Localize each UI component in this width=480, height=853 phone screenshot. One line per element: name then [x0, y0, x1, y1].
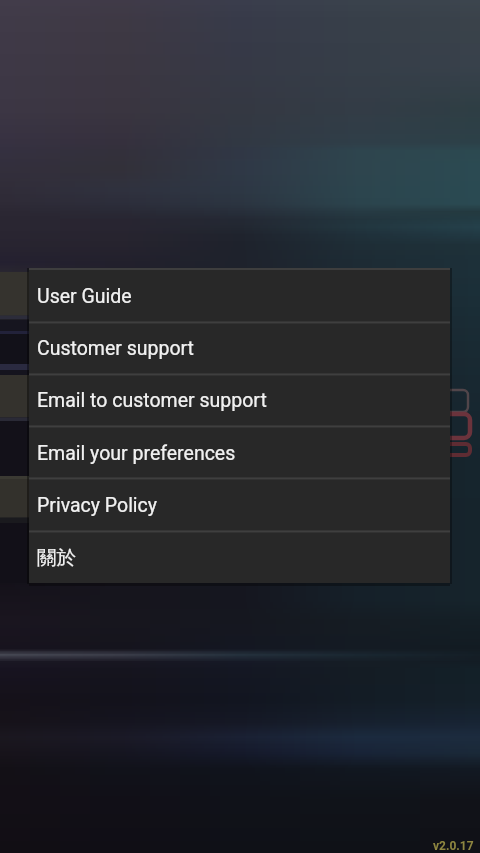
button[interactable]: User Guide [29, 270, 450, 322]
button[interactable]: Privacy Policy [29, 479, 450, 531]
staticText: Privacy Policy [37, 494, 158, 517]
staticText: 關於 [37, 545, 76, 570]
button[interactable]: Customer support [29, 322, 450, 374]
button[interactable]: Email to customer support [29, 374, 450, 426]
staticText: Email to customer support [37, 389, 267, 412]
staticText: Email your preferences [37, 442, 236, 465]
staticText: User Guide [37, 285, 132, 308]
staticText: v2.0.17 [433, 839, 474, 853]
staticText: Customer support [37, 337, 194, 360]
button[interactable]: Email your preferences [29, 427, 450, 479]
button[interactable]: 關於 [29, 531, 450, 583]
